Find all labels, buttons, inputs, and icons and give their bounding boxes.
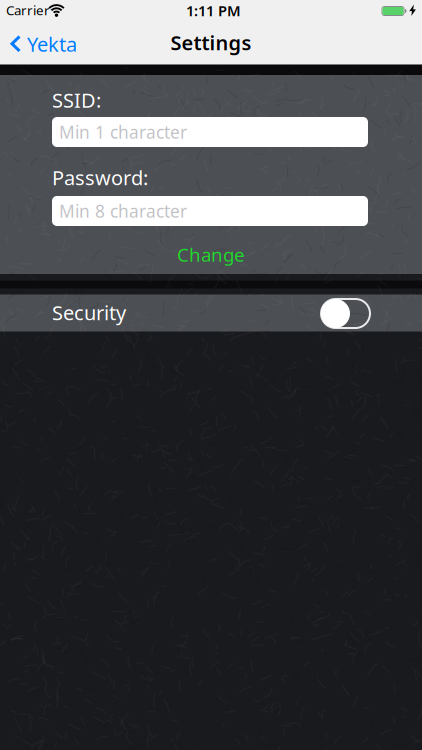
staticText: Security [52, 299, 126, 326]
button[interactable]: Password [52, 196, 368, 226]
staticText: SSID: [52, 87, 101, 113]
staticText: Settings [170, 29, 251, 56]
button[interactable]: Security [319, 297, 370, 328]
staticText: Min 8 character [59, 199, 187, 222]
button[interactable]: Change [166, 242, 256, 266]
staticText: 1:11 PM [186, 1, 241, 20]
staticText: Carrier [6, 1, 50, 19]
staticText: Password: [52, 164, 148, 191]
staticText: Change [177, 242, 245, 267]
staticText: Min 1 character [59, 120, 187, 143]
button[interactable]: SSID [52, 117, 368, 147]
staticText: Yekta [27, 31, 77, 57]
button[interactable]: Back [0, 33, 90, 54]
